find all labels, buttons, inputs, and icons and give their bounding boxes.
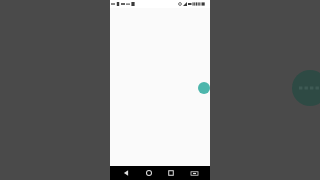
other: Recording indicator	[292, 70, 320, 106]
button[interactable]: Home	[142, 166, 156, 180]
button[interactable]: Screenshot	[187, 166, 201, 180]
button[interactable]: Back	[119, 166, 133, 180]
button[interactable]: Floating action button	[198, 82, 210, 94]
button[interactable]: Recent apps	[164, 166, 178, 180]
